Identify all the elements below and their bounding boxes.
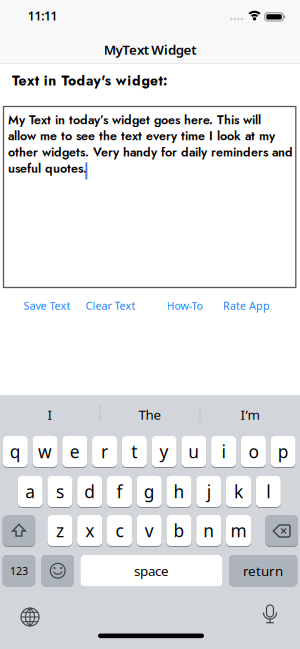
staticText: v <box>145 519 154 542</box>
staticText: t <box>131 440 137 463</box>
button[interactable]: Delete <box>0 0 300 649</box>
button[interactable]: v <box>137 515 162 546</box>
button[interactable]: q <box>3 436 28 467</box>
staticText: other widgets. Very handy for daily remi… <box>8 143 293 161</box>
button[interactable]: I’m <box>202 400 298 428</box>
staticText: b <box>173 519 184 542</box>
button[interactable]: u <box>181 436 206 467</box>
staticText: useful quotes. <box>8 159 87 177</box>
button[interactable]: p <box>271 436 296 467</box>
staticText: 123 <box>10 564 28 578</box>
button[interactable]: return <box>229 555 297 586</box>
button[interactable]: x <box>77 515 102 546</box>
staticText: z <box>56 519 64 542</box>
staticText: c <box>115 519 123 542</box>
button[interactable]: b <box>166 515 191 546</box>
button[interactable]: Clear Text <box>85 298 135 313</box>
staticText: How-To <box>166 298 202 313</box>
button[interactable]: o <box>241 436 266 467</box>
staticText: My Text in today’s widget goes here. Thi… <box>8 111 261 129</box>
staticText: w <box>38 440 52 463</box>
staticText: y <box>160 440 169 463</box>
button[interactable]: k <box>226 476 251 507</box>
button[interactable]: j <box>196 476 221 507</box>
button[interactable]: n <box>196 515 221 546</box>
button[interactable]: g <box>137 476 162 507</box>
staticText: The <box>138 406 161 423</box>
button[interactable]: r <box>92 436 117 467</box>
staticText: I <box>47 406 52 423</box>
button[interactable]: a <box>18 476 43 507</box>
staticText: e <box>70 440 80 463</box>
staticText: p <box>278 440 289 463</box>
staticText: u <box>188 440 199 463</box>
staticText: I’m <box>240 406 259 423</box>
staticText: n <box>203 519 214 542</box>
staticText: o <box>248 440 258 463</box>
button[interactable]: 123 <box>3 555 35 586</box>
staticText: a <box>25 480 35 503</box>
button[interactable]: w <box>33 436 58 467</box>
button[interactable]: m <box>226 515 251 546</box>
staticText: m <box>230 519 246 542</box>
button[interactable]: h <box>166 476 191 507</box>
staticText: x <box>85 519 94 542</box>
staticText: Rate App <box>223 298 270 313</box>
staticText: j <box>207 480 211 503</box>
staticText: h <box>173 480 184 503</box>
staticText: i <box>222 440 226 463</box>
button[interactable]: The <box>102 400 198 428</box>
staticText: s <box>56 480 64 503</box>
button[interactable]: Emoji <box>0 0 300 649</box>
staticText: l <box>266 480 270 503</box>
button[interactable]: y <box>152 436 177 467</box>
button[interactable]: How-To <box>166 298 202 313</box>
staticText: f <box>116 480 122 503</box>
staticText: r <box>101 440 108 463</box>
staticText: d <box>84 480 95 503</box>
button[interactable]: Shift <box>0 0 300 649</box>
staticText: MyText Widget <box>104 41 196 58</box>
staticText: Clear Text <box>85 298 135 313</box>
button[interactable]: space <box>80 555 222 586</box>
button[interactable]: i <box>211 436 236 467</box>
button[interactable]: z <box>47 515 72 546</box>
button[interactable]: l <box>256 476 281 507</box>
staticText: 11:11 <box>28 8 58 24</box>
button[interactable]: c <box>107 515 132 546</box>
staticText: k <box>234 480 243 503</box>
button[interactable]: I <box>2 400 98 428</box>
staticText: space <box>134 562 169 580</box>
button[interactable]: s <box>47 476 72 507</box>
staticText: allow me to see the text every time I lo… <box>8 127 275 145</box>
staticText: Save Text <box>23 298 70 313</box>
staticText: q <box>10 440 21 463</box>
button[interactable]: Save Text <box>23 298 70 313</box>
button[interactable]: Dictate <box>0 0 300 649</box>
button[interactable]: d <box>77 476 102 507</box>
button[interactable]: e <box>62 436 87 467</box>
staticText: return <box>243 562 283 580</box>
button[interactable]: f <box>107 476 132 507</box>
button[interactable]: Next keyboard <box>0 0 300 649</box>
staticText: g <box>144 480 155 503</box>
button[interactable]: t <box>122 436 147 467</box>
button[interactable]: Rate App <box>223 298 270 313</box>
staticText: Text in Today's widget: <box>12 71 167 91</box>
